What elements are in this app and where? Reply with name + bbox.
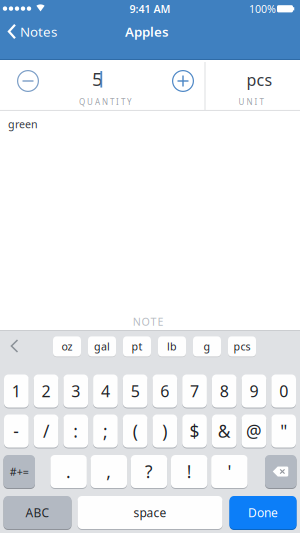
button[interactable]: pcs [228, 336, 256, 357]
button[interactable]: pcs [229, 63, 289, 97]
button[interactable]: @ [242, 414, 266, 448]
staticText: ! [187, 460, 192, 483]
button[interactable]: 1 [4, 374, 29, 408]
staticText: space [133, 504, 166, 520]
button[interactable]: ' [211, 454, 248, 488]
button[interactable]: #+= [3, 454, 35, 488]
button[interactable]: ? [131, 454, 167, 488]
button[interactable]: gal [88, 336, 116, 357]
button[interactable]: Increase quantity [171, 69, 195, 93]
staticText: QUANTITY [79, 97, 136, 107]
button[interactable]: 3 [63, 374, 88, 408]
staticText: g [203, 339, 210, 353]
button[interactable]: Previous suggestions [10, 340, 18, 352]
staticText: Done [248, 504, 278, 520]
staticText: ( [133, 419, 138, 442]
staticText: green [8, 117, 38, 131]
staticText: 100% [249, 2, 276, 16]
staticText: 0 [279, 380, 288, 402]
button[interactable]: - [4, 414, 29, 448]
button[interactable]: : [63, 414, 88, 448]
staticText: - [13, 419, 19, 442]
staticText: : [73, 419, 78, 442]
staticText: lb [167, 339, 177, 353]
staticText: , [106, 460, 111, 483]
staticText: 1 [12, 380, 21, 402]
staticText: / [43, 419, 49, 442]
staticText: Notes [20, 23, 57, 40]
staticText: pcs [246, 69, 272, 90]
button[interactable]: " [271, 414, 296, 448]
staticText: NOTE [133, 314, 167, 329]
button[interactable]: ABC [3, 495, 71, 529]
button[interactable]: Back to Notes [8, 11, 57, 52]
staticText: 6 [160, 380, 169, 402]
button[interactable]: ( [123, 414, 147, 448]
button[interactable]: 6 [152, 374, 177, 408]
staticText: ABC [25, 504, 49, 520]
button[interactable]: oz [53, 336, 81, 357]
button[interactable]: lb [158, 336, 186, 357]
button[interactable]: 0 [271, 374, 296, 408]
staticText: & [218, 419, 231, 442]
staticText: ; [103, 419, 108, 442]
staticText: 3 [71, 380, 80, 402]
staticText: gal [94, 339, 110, 353]
button[interactable]: 9 [242, 374, 266, 408]
staticText: 2 [42, 380, 51, 402]
staticText: $ [190, 419, 200, 442]
staticText: Apples [125, 23, 169, 40]
button[interactable]: & [212, 414, 237, 448]
staticText: @ [246, 419, 262, 442]
button[interactable]: ) [152, 414, 177, 448]
staticText: 8 [220, 380, 229, 402]
button[interactable]: 7 [182, 374, 207, 408]
button[interactable]: Done [229, 495, 296, 529]
staticText: UNIT [238, 97, 267, 107]
staticText: ) [162, 419, 167, 442]
staticText: 5 [131, 380, 140, 402]
staticText: ? [145, 460, 153, 483]
staticText: 4 [101, 380, 110, 402]
button[interactable]: , [90, 454, 127, 488]
button[interactable]: space [77, 495, 222, 529]
button[interactable]: ! [171, 454, 207, 488]
button[interactable]: / [34, 414, 58, 448]
staticText: pcs [233, 339, 250, 353]
button[interactable]: . [50, 454, 87, 488]
button[interactable]: g [193, 336, 221, 357]
staticText: 9 [249, 380, 258, 402]
button[interactable]: 8 [212, 374, 237, 408]
button[interactable]: ; [93, 414, 118, 448]
staticText: oz [61, 339, 72, 353]
staticText: #+= [10, 464, 29, 479]
button[interactable]: 2 [34, 374, 58, 408]
button[interactable]: 4 [93, 374, 118, 408]
staticText: 9:41 AM [129, 2, 170, 16]
button[interactable]: Delete [265, 454, 296, 488]
staticText: 5 [92, 66, 103, 91]
staticText: ' [227, 460, 231, 483]
staticText: 7 [190, 380, 199, 402]
button[interactable]: pt [123, 336, 151, 357]
staticText: . [66, 460, 71, 483]
button[interactable]: $ [182, 414, 207, 448]
button[interactable]: 5 [123, 374, 147, 408]
staticText: " [280, 419, 287, 442]
button[interactable]: Decrease quantity [16, 69, 40, 93]
staticText: pt [131, 339, 142, 353]
